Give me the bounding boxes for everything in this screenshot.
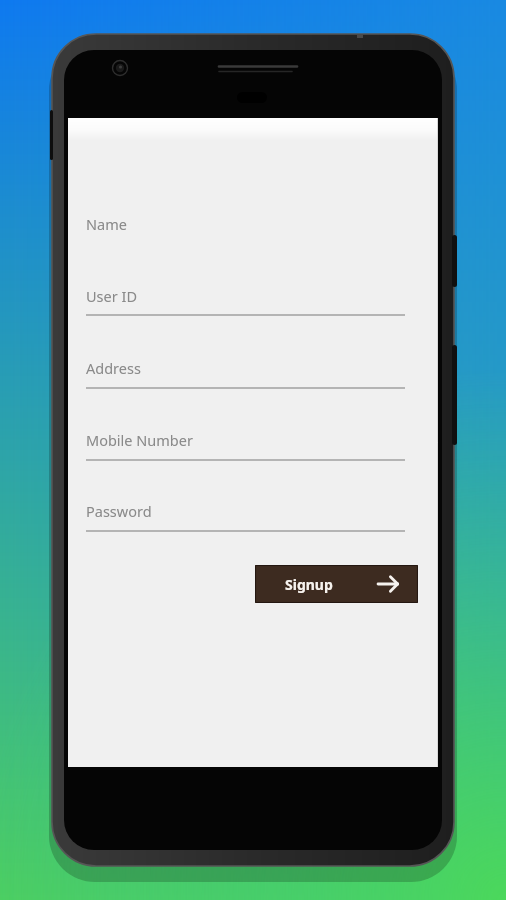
staticText: User ID (86, 286, 137, 306)
button[interactable]: Name (86, 211, 405, 237)
staticText: Mobile Number (86, 430, 193, 450)
button[interactable]: Mobile Number (86, 427, 405, 453)
button[interactable]: Address (86, 355, 405, 381)
staticText: Address (86, 358, 141, 378)
button[interactable]: Signup (255, 565, 418, 603)
staticText: Password (86, 501, 152, 521)
button[interactable]: Password (86, 498, 405, 524)
staticText: Signup (285, 575, 333, 594)
staticText: Name (86, 214, 127, 234)
button[interactable]: User ID (86, 283, 405, 309)
